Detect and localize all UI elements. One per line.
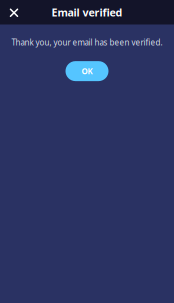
button[interactable]: Close xyxy=(0,0,28,24)
staticText: Email verified xyxy=(51,5,122,19)
button[interactable]: OK xyxy=(65,61,108,81)
staticText: OK xyxy=(81,66,92,76)
staticText: Thank you, your email has been verified. xyxy=(11,37,162,48)
